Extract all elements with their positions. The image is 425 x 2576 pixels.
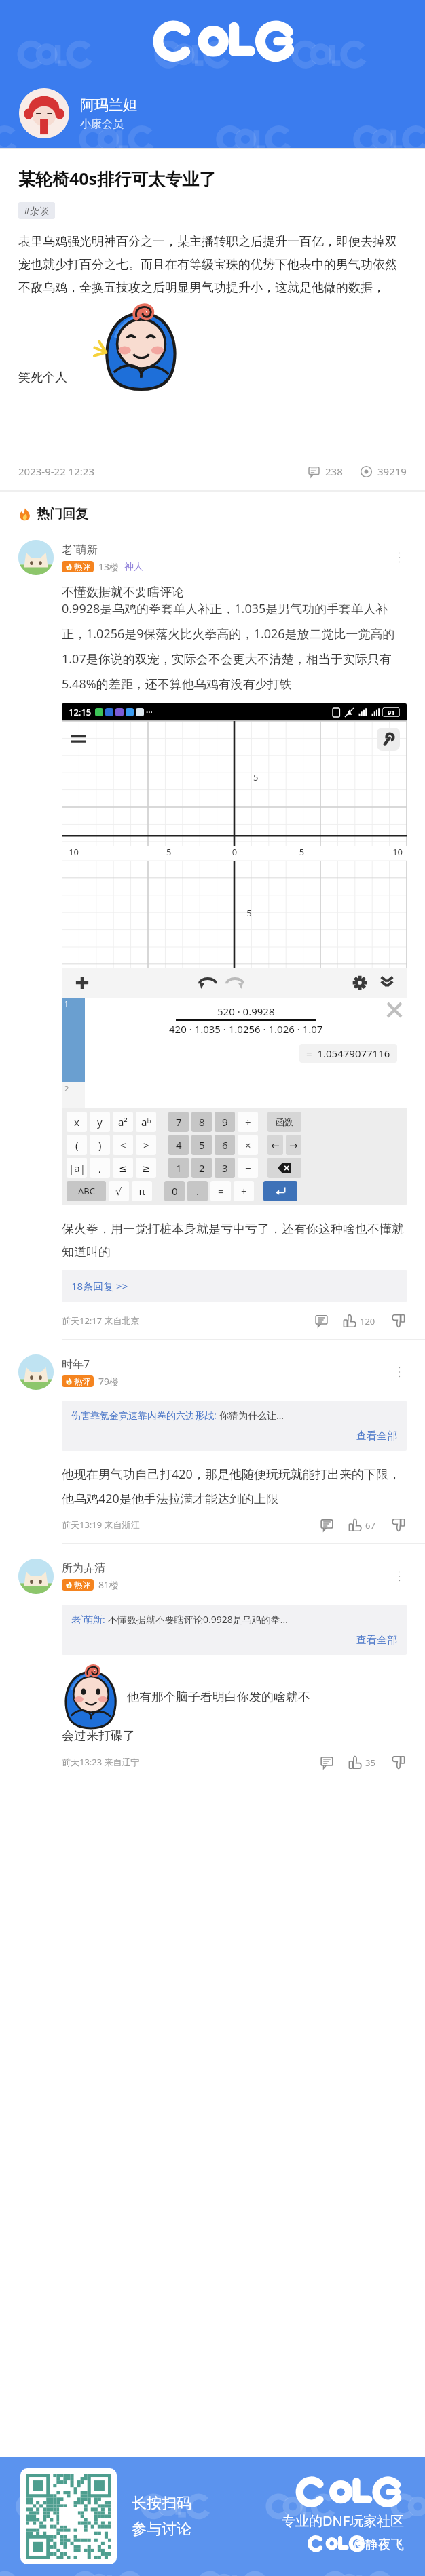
staticText: 238 [325,465,343,478]
button[interactable]: 3 [215,1158,235,1178]
button[interactable]: More options [392,550,407,565]
button[interactable]: #杂谈 [24,204,50,217]
staticText: @静夜飞 [354,2535,405,2553]
staticText: #杂谈 [24,204,50,217]
button[interactable]: Add [74,975,90,991]
staticText: − [245,1161,251,1175]
staticText: 9 [222,1115,228,1129]
staticText: ÷ [245,1115,251,1129]
staticText: 不懂数据就不要瞎评论 [62,585,184,600]
staticText: 你猜为什么让… [219,1409,397,1422]
button[interactable]: y [90,1112,110,1132]
button[interactable]: ) [90,1135,110,1155]
staticText: ← [271,1139,280,1151]
button[interactable]: ≥ [136,1158,156,1178]
button[interactable]: 18条回复 >> [71,1279,397,1293]
button[interactable]: ( [67,1135,87,1155]
button[interactable]: √ [109,1181,129,1201]
button[interactable]: 热评 [65,1376,90,1386]
button[interactable]: 9 [215,1112,235,1132]
staticText: 420 · 1.035 · 1.0256 · 1.026 · 1.07 [169,1022,323,1036]
button[interactable]: Collapse [380,975,394,990]
button[interactable]: Reply [318,1516,335,1534]
button[interactable]: 1 [168,1158,189,1178]
button[interactable]: → [286,1135,301,1155]
button[interactable]: 函数 [267,1112,301,1132]
button[interactable]: Backspace [267,1158,301,1178]
button[interactable]: ABC [67,1181,106,1201]
button[interactable]: Undo [200,975,216,991]
button[interactable]: More options [392,1569,407,1584]
button[interactable]: 6 [215,1135,235,1155]
button[interactable]: 0 [164,1181,185,1201]
button[interactable]: 伤害靠氪金竞速靠内卷的六边形战: [71,1409,397,1443]
staticText: -5 [244,907,252,919]
button[interactable]: = [210,1181,231,1201]
button[interactable]: 时年7 [18,1354,407,1390]
button[interactable]: ← [267,1135,283,1155]
staticText: 13楼 [98,560,119,573]
button[interactable]: 热评 [65,1580,90,1590]
staticText: 2 [64,1083,69,1093]
button[interactable]: Dislike [389,1516,407,1534]
staticText: 阿玛兰妲 [80,96,137,114]
staticText: 会过来打碟了 [62,1728,135,1744]
staticText: 6 [222,1138,228,1152]
staticText: 35 [365,1757,375,1769]
button[interactable]: x [67,1112,87,1132]
button[interactable]: 所为弄清 [18,1559,407,1594]
staticText: < [120,1138,126,1152]
button[interactable]: aᵇ [136,1112,156,1132]
staticText: a² [118,1115,128,1129]
staticText: 函数 [276,1116,293,1127]
staticText: 120 [360,1315,375,1327]
button[interactable]: 2 [191,1158,212,1178]
staticText: 1 [176,1161,182,1175]
button[interactable]: 热评 [65,562,90,572]
button[interactable]: ≤ [113,1158,133,1178]
button[interactable]: π [132,1181,152,1201]
staticText: 0.9928是乌鸡的拳套单人补正，1.035是男气功的手套单人补正，1.0256… [62,600,407,692]
button[interactable]: Graph settings [352,975,367,990]
button[interactable]: 阿玛兰妲 [19,88,137,138]
button[interactable]: Settings [377,728,400,751]
button[interactable]: Redo [227,975,243,991]
button[interactable]: |a| [67,1158,87,1178]
button[interactable]: + [234,1181,254,1201]
button[interactable]: Dislike [389,1312,407,1329]
button[interactable]: 67 [349,1519,375,1531]
button[interactable]: 5 [191,1135,212,1155]
staticText: 5 [199,1138,205,1152]
staticText: + [241,1184,247,1198]
button[interactable]: Reply [312,1312,330,1329]
button[interactable]: × [238,1135,258,1155]
button[interactable]: Enter [263,1181,297,1201]
button[interactable]: Reply [318,1753,335,1771]
button[interactable]: , [90,1158,110,1178]
button[interactable]: < [113,1135,133,1155]
staticText: ≤ [119,1163,128,1174]
staticText: 表里乌鸡强光明神百分之一，某主播转职之后提升一百亿，即便去掉双宠也就少打百分之七… [18,234,407,296]
button[interactable]: QR code [26,2474,111,2559]
staticText: 18条回复 >> [71,1279,128,1293]
button[interactable]: 4 [168,1135,189,1155]
button[interactable]: 7 [168,1112,189,1132]
staticText: 2 [199,1161,205,1175]
button[interactable]: More options [392,1365,407,1380]
button[interactable]: − [238,1158,258,1178]
staticText: x [74,1115,79,1129]
button[interactable]: 35 [349,1756,375,1769]
button[interactable]: 老`萌新 [18,540,407,575]
staticText: 所为弄清 [62,1561,105,1575]
button[interactable]: 120 [344,1314,375,1327]
button[interactable]: . [187,1181,208,1201]
staticText: → [289,1139,298,1151]
staticText: 老`萌新: [71,1613,108,1626]
button[interactable]: 12:15 [62,703,407,1205]
button[interactable]: ÷ [238,1112,258,1132]
button[interactable]: > [136,1135,156,1155]
button[interactable]: a² [113,1112,133,1132]
button[interactable]: 老`萌新: [71,1613,397,1647]
button[interactable]: 8 [191,1112,212,1132]
button[interactable]: Dislike [389,1753,407,1771]
